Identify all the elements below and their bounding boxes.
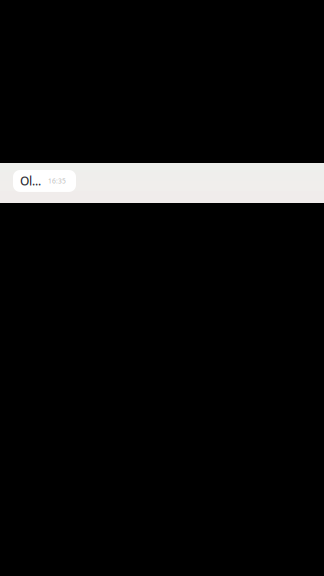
- staticText: Ol...: [20, 173, 41, 189]
- staticText: 16:35: [48, 176, 66, 185]
- button[interactable]: Ol...: [13, 170, 76, 192]
